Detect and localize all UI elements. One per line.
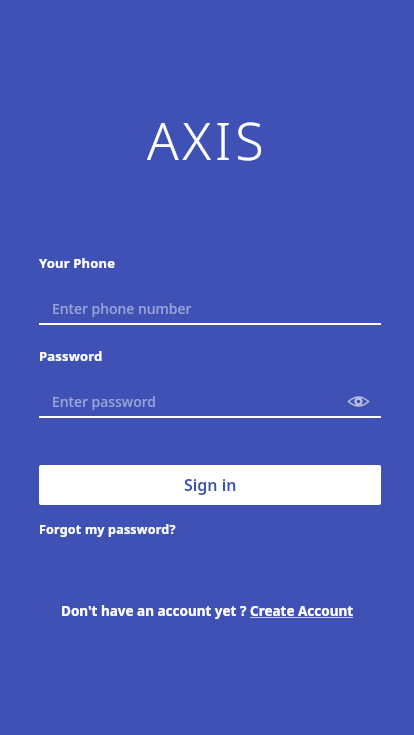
staticText: AXIS	[147, 104, 268, 175]
button[interactable]: Sign in	[39, 465, 381, 505]
staticText: Your Phone	[39, 254, 116, 272]
staticText: Password	[39, 347, 103, 365]
staticText: Enter phone number	[52, 299, 192, 318]
staticText: Sign in	[184, 474, 237, 496]
button[interactable]: Enter password	[39, 386, 381, 416]
button[interactable]: Show password	[346, 389, 370, 413]
staticText: Don't have an account yet ?	[61, 602, 250, 620]
staticText: Create Account	[250, 602, 354, 620]
button[interactable]: Forgot my password?	[39, 521, 176, 538]
button[interactable]: Enter phone number	[39, 293, 381, 323]
staticText: Forgot my password?	[39, 521, 176, 538]
button[interactable]: Create Account	[250, 602, 354, 620]
staticText: Enter password	[52, 392, 157, 411]
